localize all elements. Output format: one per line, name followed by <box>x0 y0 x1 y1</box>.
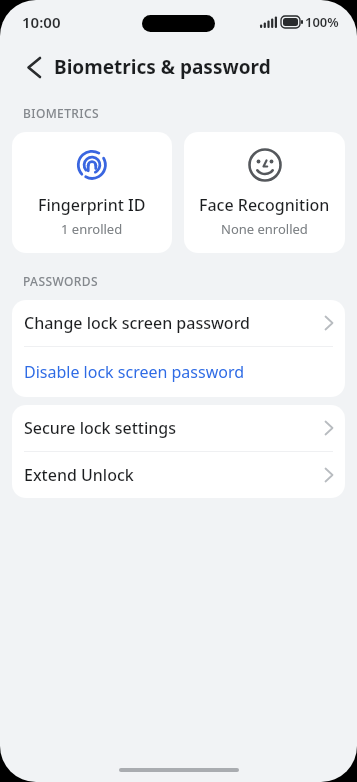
staticText: Secure lock settings <box>24 417 325 439</box>
staticText: Biometrics & password <box>54 54 271 80</box>
staticText: PASSWORDS <box>23 273 98 289</box>
staticText: 1 enrolled <box>61 220 123 238</box>
button[interactable]: Change lock screen password <box>12 300 345 346</box>
button[interactable]: Extend Unlock <box>12 452 345 498</box>
button[interactable]: Disable lock screen password <box>12 347 345 397</box>
staticText: 100% <box>305 13 339 31</box>
staticText: Change lock screen password <box>24 312 325 334</box>
staticText: None enrolled <box>221 220 308 238</box>
button[interactable]: Face Recognition <box>184 132 345 253</box>
staticText: Disable lock screen password <box>24 361 245 383</box>
staticText: BIOMETRICS <box>23 105 100 121</box>
staticText: Face Recognition <box>199 194 330 216</box>
staticText: 10:00 <box>22 12 61 32</box>
staticText: Extend Unlock <box>24 464 325 486</box>
button[interactable]: Secure lock settings <box>12 405 345 451</box>
staticText: Fingerprint ID <box>38 194 146 216</box>
button[interactable] <box>22 55 46 79</box>
button[interactable]: Fingerprint ID <box>12 132 172 253</box>
